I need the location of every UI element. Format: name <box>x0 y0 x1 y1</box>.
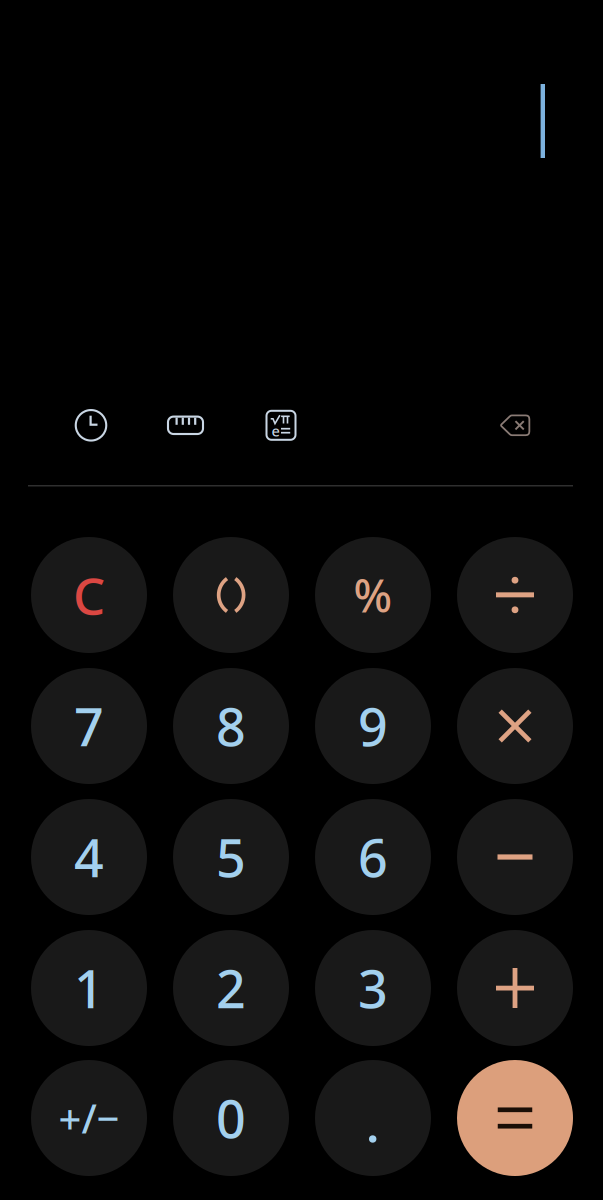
button[interactable]: History <box>63 397 119 453</box>
staticText: +/− <box>58 1091 119 1144</box>
button[interactable]: Multiply <box>457 668 573 784</box>
staticText: 2 <box>216 953 246 1023</box>
button[interactable] <box>315 930 431 1046</box>
button[interactable]: Divide <box>457 537 573 653</box>
staticText: 0 <box>216 1083 246 1153</box>
staticText: C <box>73 561 105 629</box>
button[interactable] <box>31 668 147 784</box>
button[interactable]: Plus minus <box>31 1060 147 1176</box>
button[interactable] <box>173 930 289 1046</box>
button[interactable] <box>31 799 147 915</box>
button[interactable]: Minus <box>457 799 573 915</box>
button[interactable]: Percent <box>315 537 431 653</box>
staticText: % <box>353 565 392 625</box>
button[interactable]: Backspace <box>487 397 543 453</box>
staticText: 1 <box>74 953 104 1023</box>
button[interactable] <box>173 668 289 784</box>
staticText: 4 <box>74 822 104 892</box>
button[interactable]: Unit converter <box>157 397 213 453</box>
button[interactable] <box>31 930 147 1046</box>
button[interactable]: Equals <box>457 1060 573 1176</box>
button[interactable] <box>173 1060 289 1176</box>
button[interactable]: Scientific calculator <box>253 397 309 453</box>
staticText: 9 <box>358 691 388 761</box>
button[interactable] <box>315 799 431 915</box>
button[interactable]: Decimal point <box>315 1060 431 1176</box>
staticText: 6 <box>358 822 388 892</box>
staticText: 8 <box>216 691 246 761</box>
button[interactable]: Clear <box>31 537 147 653</box>
button[interactable] <box>173 799 289 915</box>
staticText: 7 <box>74 691 104 761</box>
button[interactable] <box>315 668 431 784</box>
staticText: 3 <box>358 953 388 1023</box>
staticText: 5 <box>216 822 246 892</box>
button[interactable]: Parentheses <box>173 537 289 653</box>
button[interactable]: Plus <box>457 930 573 1046</box>
staticText: e <box>271 421 279 441</box>
